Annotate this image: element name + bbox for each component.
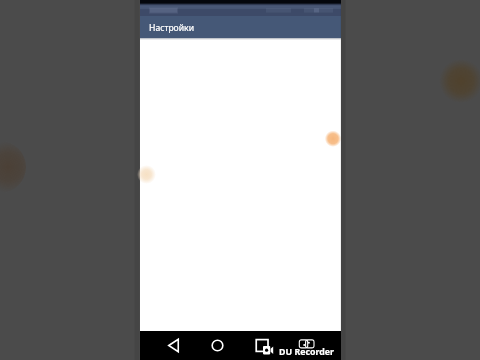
staticText: Настройки	[149, 22, 194, 34]
other: Screenshot	[299, 339, 315, 349]
staticText: DU Recorder	[279, 346, 334, 358]
other: Recording	[263, 346, 274, 355]
button[interactable]: Recent apps	[253, 336, 272, 355]
button[interactable]: Back	[164, 336, 183, 355]
button[interactable]: Home	[208, 336, 227, 355]
